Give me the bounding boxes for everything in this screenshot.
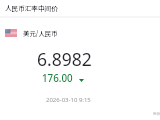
- staticText: 2026-03-10 9:15: [46, 96, 91, 104]
- button[interactable]: 176.00: [42, 72, 84, 85]
- staticText: 美元/人民币: [23, 29, 58, 38]
- staticText: 6.8982: [37, 47, 92, 71]
- other: United States flag: [5, 29, 17, 37]
- staticText: 新浪财经: [153, 111, 160, 116]
- button[interactable]: 人民币汇率中间价: [5, 3, 58, 13]
- staticText: 176.00: [42, 72, 73, 85]
- other: Down: [79, 79, 84, 82]
- button[interactable]: United States flag: [0, 28, 160, 38]
